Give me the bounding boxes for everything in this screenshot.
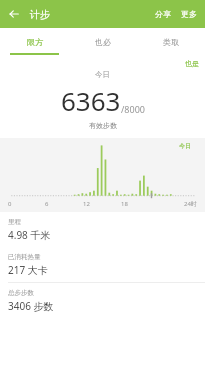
staticText: 今日 (95, 70, 110, 79)
button[interactable]: 分享 (149, 3, 177, 25)
staticText: 217 大卡 (8, 263, 48, 277)
staticText: 24时 (184, 200, 197, 208)
staticText: 分享 (155, 9, 171, 19)
button[interactable]: 更多 (177, 3, 205, 25)
staticText: 类取 (163, 37, 179, 47)
staticText: 6 (45, 200, 49, 208)
staticText: 也是 (185, 59, 199, 68)
staticText: 也必 (95, 37, 111, 47)
staticText: /8000 (121, 103, 145, 115)
staticText: 限方 (27, 37, 43, 47)
staticText: 3406 步数 (8, 299, 54, 313)
staticText: 18 (121, 200, 128, 208)
button[interactable]: Back (0, 0, 28, 28)
staticText: 今日 (179, 142, 191, 150)
button[interactable]: 也是 (185, 55, 205, 68)
staticText: 0 (8, 200, 12, 208)
button[interactable]: 也必 (69, 28, 137, 55)
staticText: 计步 (30, 8, 50, 21)
staticText: 里程 (8, 218, 21, 226)
button[interactable]: 总步步数 (0, 283, 205, 318)
button[interactable]: 类取 (137, 28, 205, 55)
staticText: 更多 (181, 9, 197, 19)
staticText: 总步步数 (8, 289, 34, 297)
staticText: 4.98 千米 (8, 228, 51, 242)
staticText: 12 (83, 200, 90, 208)
staticText: 已消耗热量 (8, 253, 41, 261)
staticText: 有效步数 (89, 121, 117, 130)
button[interactable]: 限方 (0, 28, 69, 55)
button[interactable]: 已消耗热量 (0, 247, 205, 283)
staticText: 6363 (61, 83, 121, 118)
button[interactable]: 里程 (0, 212, 205, 247)
